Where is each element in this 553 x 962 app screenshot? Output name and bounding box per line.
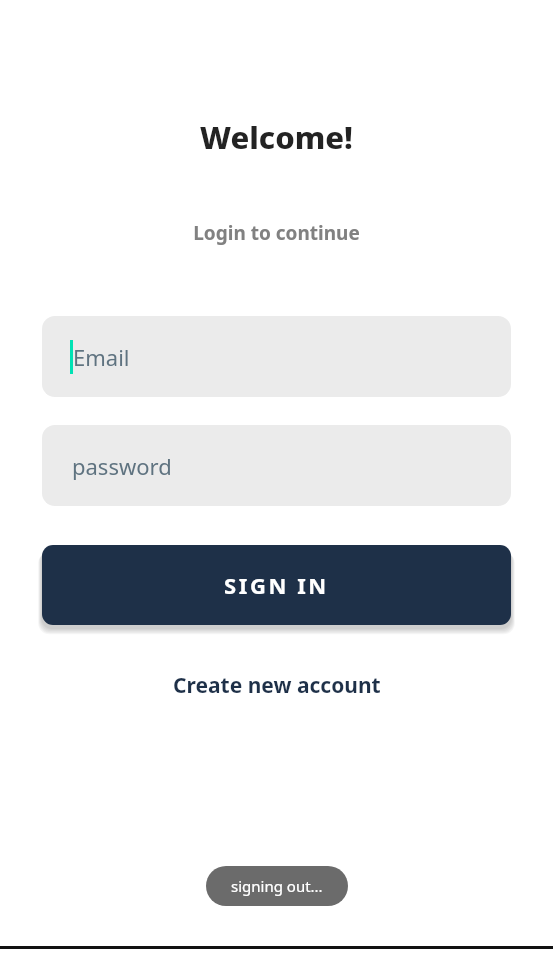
staticText: SIGN IN xyxy=(224,570,329,600)
button[interactable]: SIGN IN xyxy=(42,545,511,625)
button[interactable]: password xyxy=(42,425,511,506)
staticText: Create new account xyxy=(173,671,381,700)
button[interactable]: Email xyxy=(42,316,511,397)
staticText: Login to continue xyxy=(193,220,360,246)
staticText: signing out... xyxy=(231,876,323,896)
staticText: Email xyxy=(73,342,130,372)
staticText: Welcome! xyxy=(200,116,353,158)
button[interactable]: Create new account xyxy=(159,663,395,708)
staticText: password xyxy=(72,451,172,481)
